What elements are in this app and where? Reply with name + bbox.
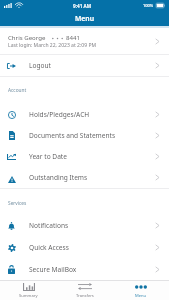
button[interactable]: Documents and Statements	[0, 125, 169, 146]
staticText: Chris George	[8, 33, 46, 41]
staticText: Documents and Statements	[29, 131, 116, 140]
button[interactable]: Quick Access	[0, 236, 169, 258]
other: Transfers	[78, 283, 92, 290]
button[interactable]: Menu	[113, 281, 169, 300]
other: Menu	[135, 285, 147, 289]
staticText: Year to Date	[29, 152, 67, 161]
staticText: 9:41 AM	[73, 3, 92, 9]
button[interactable]: Chris George	[0, 28, 169, 54]
button[interactable]: Transfers	[57, 281, 113, 300]
other: Summary	[23, 283, 35, 291]
staticText: Summary	[19, 293, 38, 299]
staticText: Holds/Pledges/ACH	[29, 110, 90, 119]
button[interactable]: Year to Date	[0, 146, 169, 167]
button[interactable]: Logout	[0, 55, 169, 76]
staticText: Menu	[75, 14, 94, 23]
staticText: Menu	[135, 293, 147, 299]
staticText: Services	[8, 200, 27, 207]
button[interactable]: Secure MailBox	[0, 258, 169, 280]
staticText: 100%	[143, 3, 154, 8]
staticText: Notifications	[29, 221, 69, 230]
staticText: Outstanding Items	[29, 173, 88, 182]
staticText: Last login: March 22, 2023 at 2:09 PM	[8, 42, 97, 49]
staticText: Logout	[29, 61, 51, 70]
button[interactable]: Summary	[0, 281, 57, 300]
button[interactable]: Holds/Pledges/ACH	[0, 104, 169, 125]
staticText: Secure MailBox	[29, 265, 77, 274]
staticText: Transfers	[76, 293, 94, 299]
staticText: 8441	[66, 33, 80, 41]
staticText: Account	[8, 87, 27, 94]
button[interactable]: Notifications	[0, 214, 169, 236]
staticText: Quick Access	[29, 243, 69, 252]
button[interactable]: Outstanding Items	[0, 167, 169, 188]
